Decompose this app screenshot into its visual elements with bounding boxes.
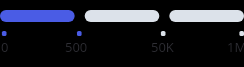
button[interactable]: Range segment 2 <box>84 10 159 22</box>
staticText: 1M <box>227 38 244 56</box>
button[interactable]: Range segment 3 <box>169 10 244 22</box>
button[interactable]: Range segment 1, selected <box>0 10 74 22</box>
staticText: 0 <box>1 38 9 56</box>
staticText: 50K <box>151 38 174 56</box>
staticText: 500 <box>65 38 88 56</box>
